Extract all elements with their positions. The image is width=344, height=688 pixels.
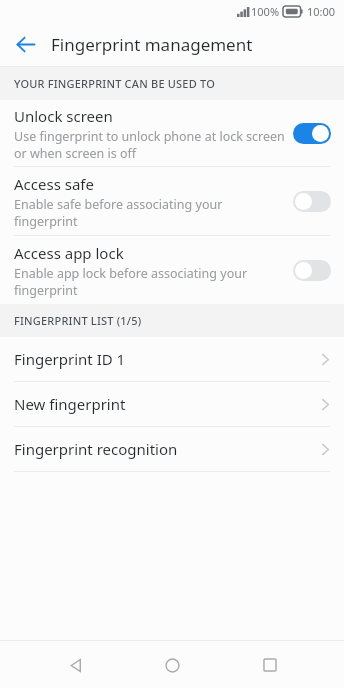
staticText: Fingerprint recognition (14, 439, 321, 459)
staticText: Enable app lock before associating your … (14, 265, 248, 298)
staticText: Access app lock (14, 243, 124, 263)
staticText: Fingerprint ID 1 (14, 349, 321, 369)
button[interactable]: Off (293, 260, 331, 281)
staticText: Enable safe before associating your fing… (14, 196, 223, 229)
staticText: YOUR FINGERPRINT CAN BE USED TO (14, 76, 215, 91)
staticText: 10:00 (307, 4, 336, 19)
button[interactable]: Fingerprint recognition (0, 427, 344, 471)
staticText: 100% (251, 4, 280, 19)
staticText: Unlock screen (14, 106, 113, 126)
staticText: Use fingerprint to unlock phone at lock … (14, 128, 285, 161)
button[interactable]: Recent apps (247, 642, 293, 688)
staticText: Fingerprint management (51, 33, 253, 56)
button[interactable]: Off (293, 191, 331, 212)
button[interactable]: Access safe (0, 167, 344, 235)
staticText: Access safe (14, 174, 94, 194)
button[interactable]: New fingerprint (0, 382, 344, 426)
staticText: New fingerprint (14, 394, 321, 414)
button[interactable]: Back (6, 25, 44, 63)
button[interactable]: Fingerprint ID 1 (0, 337, 344, 381)
staticText: FINGERPRINT LIST (1/5) (14, 313, 142, 328)
button[interactable]: Home (149, 642, 195, 688)
button[interactable]: Back (52, 642, 98, 688)
button[interactable]: Unlock screen (0, 100, 344, 166)
button[interactable]: Access app lock (0, 236, 344, 304)
button[interactable]: On (293, 123, 331, 144)
